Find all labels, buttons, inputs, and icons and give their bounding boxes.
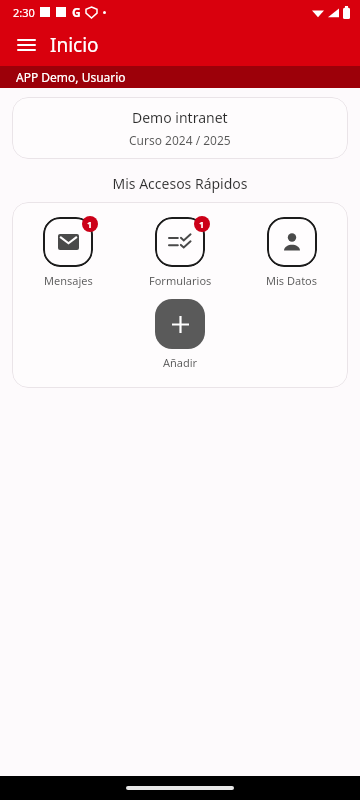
button[interactable]: Open navigation menu — [6, 25, 46, 65]
button[interactable]: Añadir — [155, 299, 205, 370]
staticText: Añadir — [163, 355, 198, 370]
staticText: 1 — [199, 218, 205, 230]
other: Añadir — [155, 299, 205, 349]
staticText: G — [72, 4, 81, 20]
other: Mensajes — [43, 217, 93, 267]
staticText: APP Demo, Usuario — [16, 69, 126, 85]
staticText: 2:30 — [13, 5, 35, 20]
other: Mis Datos — [267, 217, 317, 267]
staticText: Mis Datos — [266, 273, 318, 288]
staticText: Demo intranet — [132, 108, 228, 127]
staticText: 1 — [87, 218, 93, 230]
button[interactable]: Mis Datos — [236, 216, 348, 288]
button[interactable]: Demo intranet — [12, 97, 348, 159]
button[interactable]: Formularios — [124, 216, 236, 288]
staticText: Inicio — [50, 32, 99, 58]
staticText: Formularios — [149, 273, 212, 288]
button[interactable]: Mensajes — [12, 216, 124, 288]
other: Formularios — [155, 217, 205, 267]
staticText: Mis Accesos Rápidos — [0, 174, 360, 193]
staticText: Curso 2024 / 2025 — [129, 132, 231, 148]
staticText: Mensajes — [44, 273, 93, 288]
